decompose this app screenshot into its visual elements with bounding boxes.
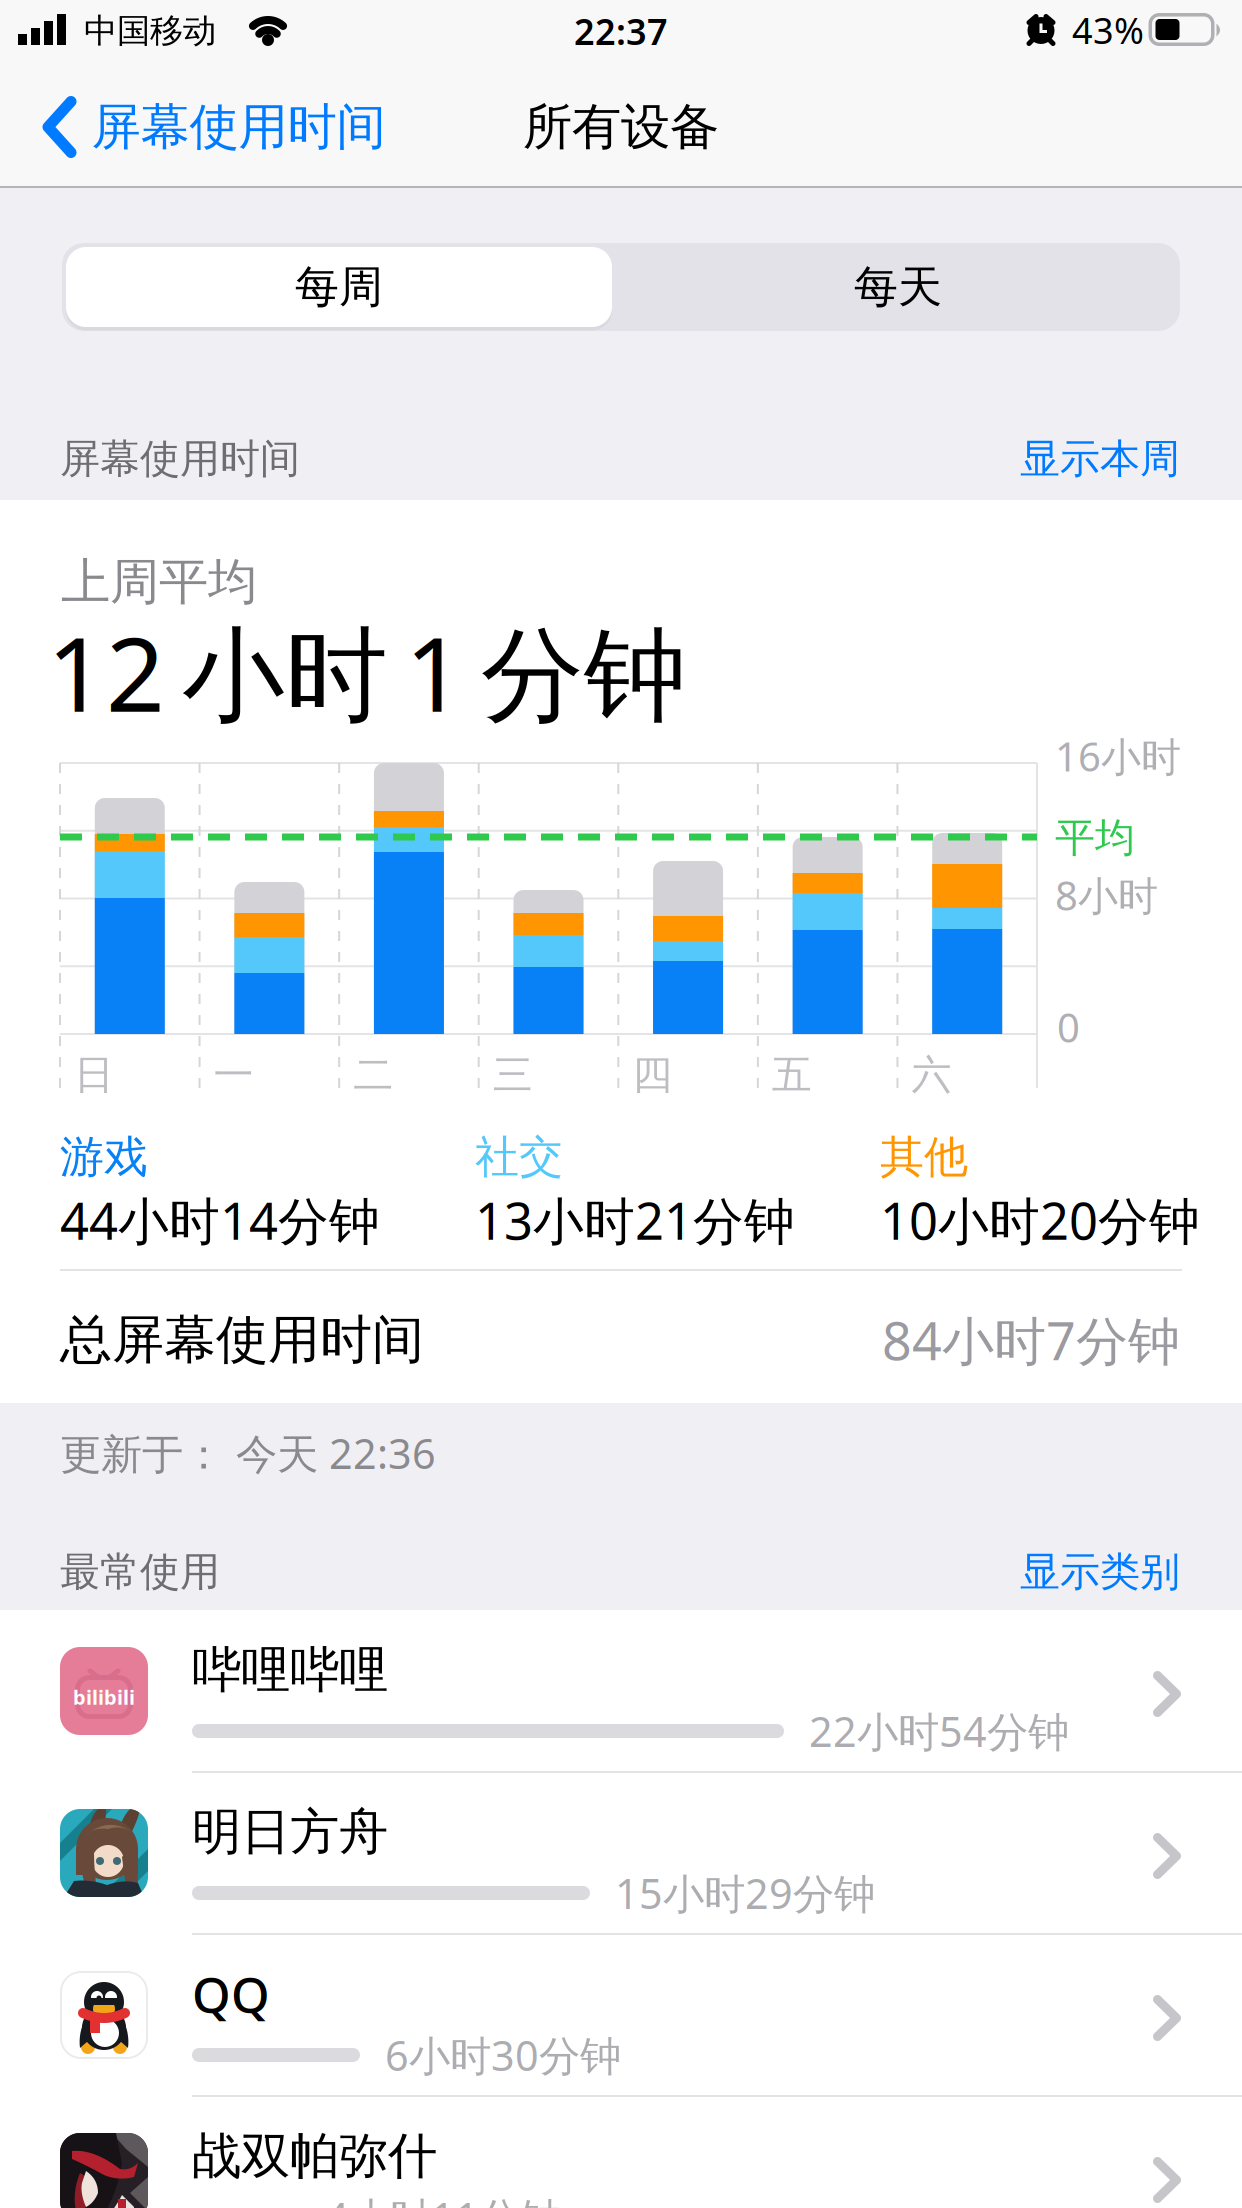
staticText: 二 — [353, 1050, 393, 1099]
staticText: bilibili — [73, 1684, 135, 1710]
button[interactable]: 明日方舟 — [0, 1772, 1242, 1934]
staticText: 上周平均 — [61, 552, 257, 612]
staticText: 五 — [772, 1050, 812, 1099]
staticText: 每周 — [295, 260, 383, 314]
staticText: 中国移动 — [84, 10, 216, 51]
staticText: 0 — [1057, 1000, 1080, 1053]
staticText: 六 — [911, 1050, 951, 1099]
staticText: 每天 — [854, 260, 942, 314]
staticText: 四 — [632, 1050, 672, 1099]
staticText: 13小时21分钟 — [475, 1186, 795, 1254]
staticText: 22小时54分钟 — [809, 1704, 1069, 1758]
staticText: 10小时20分钟 — [880, 1186, 1200, 1254]
button[interactable]: QQ — [0, 1934, 1242, 2096]
button[interactable]: 每周 — [66, 247, 612, 327]
button[interactable]: 每天 — [625, 247, 1171, 327]
button[interactable]: bilibili — [0, 1610, 1242, 1772]
staticText: 日 — [74, 1050, 114, 1099]
staticText: 游戏 — [60, 1130, 148, 1184]
staticText: 明日方舟 — [192, 1802, 388, 1862]
staticText: 屏幕使用时间 — [91, 97, 385, 157]
staticText: 一 — [214, 1050, 254, 1099]
staticText: 平均 — [1055, 813, 1135, 862]
staticText: 所有设备 — [523, 97, 719, 157]
staticText: 战双帕弥什 — [192, 2126, 437, 2186]
staticText: 15小时29分钟 — [615, 1866, 875, 1920]
staticText: 43% — [1072, 6, 1144, 54]
staticText: 8小时 — [1055, 868, 1158, 921]
button[interactable]: 显示类别 — [1020, 1547, 1180, 1596]
staticText: 更新于： 今天 22:36 — [60, 1426, 436, 1480]
staticText: 44小时14分钟 — [60, 1186, 380, 1254]
staticText: QQ — [192, 1961, 270, 2027]
staticText: 社交 — [475, 1130, 563, 1184]
staticText: 显示本周 — [1020, 434, 1180, 483]
button[interactable]: 屏幕使用时间 — [42, 92, 385, 162]
staticText: 4小时11分钟 — [325, 2190, 561, 2208]
staticText: 三 — [493, 1050, 533, 1099]
staticText: 84小时7分钟 — [882, 1305, 1180, 1375]
staticText: 16小时 — [1055, 729, 1181, 782]
staticText: 6小时30分钟 — [385, 2028, 621, 2082]
staticText: 最常使用 — [60, 1547, 220, 1596]
staticText: 12 小时 1 分钟 — [47, 604, 687, 740]
staticText: 22:37 — [574, 7, 668, 55]
button[interactable]: 战双帕弥什 — [0, 2096, 1242, 2208]
button[interactable]: 显示本周 — [1020, 434, 1180, 483]
staticText: 屏幕使用时间 — [60, 434, 300, 483]
staticText: 总屏幕使用时间 — [60, 1308, 424, 1372]
staticText: 哔哩哔哩 — [192, 1640, 388, 1700]
staticText: 显示类别 — [1020, 1547, 1180, 1596]
staticText: 其他 — [880, 1130, 968, 1184]
